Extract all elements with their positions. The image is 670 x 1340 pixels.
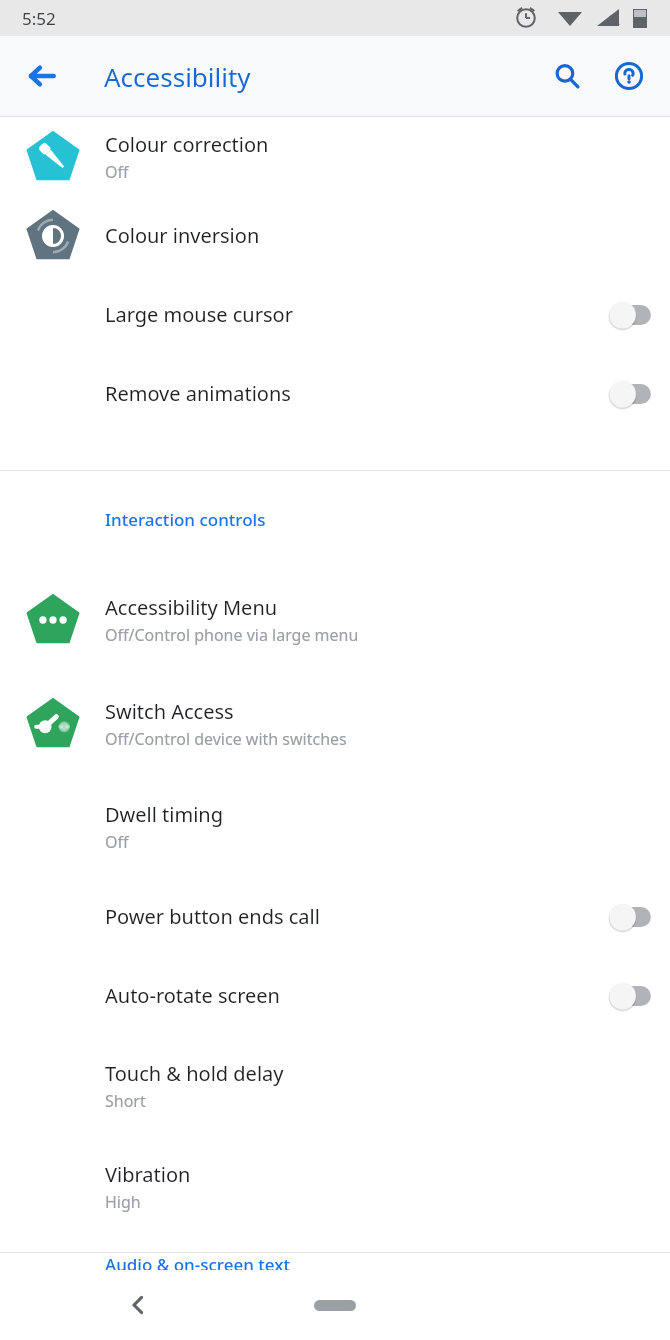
staticText: Off	[105, 161, 129, 183]
staticText: High	[105, 1191, 141, 1213]
button[interactable]: Auto-rotate screen	[0, 956, 670, 1035]
staticText: Vibration	[105, 1161, 191, 1188]
button[interactable]: Large mouse cursor	[0, 275, 670, 354]
staticText: Audio & on-screen text	[105, 1253, 290, 1270]
staticText: Off/Control device with switches	[105, 728, 347, 750]
button[interactable]: Accessibility Menu	[0, 568, 670, 672]
staticText: Remove animations	[105, 380, 291, 407]
button[interactable]: Back	[14, 48, 70, 104]
button[interactable]: Back	[110, 1277, 166, 1333]
staticText: Off	[105, 831, 129, 853]
button[interactable]: Interaction controls	[0, 471, 670, 568]
staticText: Large mouse cursor	[105, 301, 293, 328]
button[interactable]: Colour correction	[0, 117, 670, 196]
button[interactable]: Toggle	[601, 295, 659, 335]
staticText: 5:52	[22, 7, 56, 30]
staticText: Short	[105, 1090, 146, 1112]
staticText: Accessibility Menu	[105, 594, 278, 621]
button[interactable]: Audio & on-screen text	[0, 1253, 670, 1270]
button[interactable]: Toggle	[601, 374, 659, 414]
button[interactable]: Vibration	[0, 1136, 670, 1237]
button[interactable]: Power button ends call	[0, 877, 670, 956]
staticText: Accessibility	[104, 59, 251, 94]
button[interactable]: Toggle	[601, 976, 659, 1016]
staticText: Off/Control phone via large menu	[105, 624, 359, 646]
button[interactable]: Home	[314, 1300, 356, 1311]
button[interactable]: Remove animations	[0, 354, 670, 433]
button[interactable]: Dwell timing	[0, 776, 670, 877]
staticText: Dwell timing	[105, 801, 224, 828]
button[interactable]: Help	[602, 49, 656, 103]
staticText: Touch & hold delay	[105, 1060, 284, 1087]
button[interactable]: Search	[540, 49, 594, 103]
button[interactable]: Switch Access	[0, 672, 670, 776]
button[interactable]: Toggle	[601, 897, 659, 937]
staticText: Auto-rotate screen	[105, 982, 280, 1009]
staticText: Interaction controls	[105, 508, 266, 531]
staticText: Power button ends call	[105, 903, 320, 930]
staticText: Switch Access	[105, 698, 234, 725]
staticText: Colour correction	[105, 131, 269, 158]
staticText: Colour inversion	[105, 222, 260, 249]
button[interactable]: Colour inversion	[0, 196, 670, 275]
button[interactable]: Touch & hold delay	[0, 1035, 670, 1136]
